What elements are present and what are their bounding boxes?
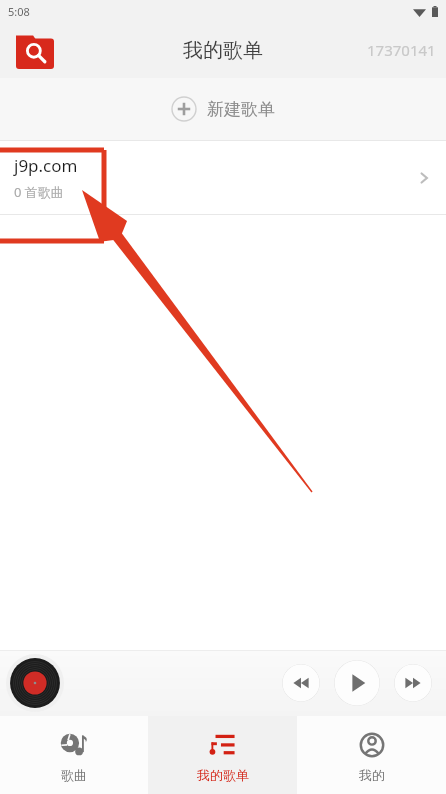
staticText: 我的 xyxy=(359,767,385,783)
button[interactable]: 我的 xyxy=(297,716,446,794)
button[interactable]: 新建歌单 xyxy=(0,78,446,140)
staticText: 我的歌单 xyxy=(197,767,249,783)
button[interactable]: 我的歌单 xyxy=(148,716,297,794)
button[interactable]: Search xyxy=(16,31,54,69)
button[interactable]: Play xyxy=(334,660,380,706)
button[interactable]: j9p.com xyxy=(0,141,446,214)
button[interactable]: 歌曲 xyxy=(0,716,148,794)
staticText: j9p.com xyxy=(14,154,78,177)
staticText: 新建歌单 xyxy=(207,99,275,120)
staticText: 0 首歌曲 xyxy=(14,183,64,201)
button[interactable]: Now playing xyxy=(6,654,64,712)
staticText: 5:08 xyxy=(8,4,30,19)
staticText: 我的歌单 xyxy=(183,38,263,63)
staticText: 歌曲 xyxy=(61,767,87,783)
button[interactable]: Next xyxy=(394,664,432,702)
button[interactable]: Previous xyxy=(282,664,320,702)
staticText: 17370141 xyxy=(367,40,436,60)
